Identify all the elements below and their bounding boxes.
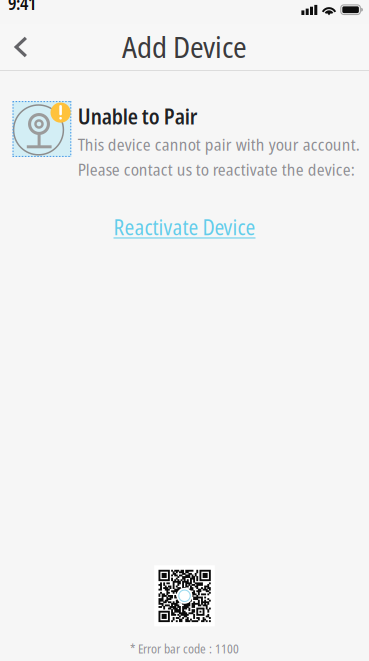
staticText: Please contact us to reactivate the devi… (78, 158, 355, 181)
staticText: Add Device (122, 26, 247, 67)
button[interactable]: Back (0, 24, 42, 70)
staticText: * Error bar code : 1100 (130, 640, 239, 657)
staticText: Unable to Pair (78, 102, 198, 131)
button[interactable]: Reactivate Device (113, 213, 255, 241)
staticText: This device cannot pair with your accoun… (78, 133, 360, 156)
staticText: 9:41 (8, 0, 36, 15)
staticText: Reactivate Device (113, 213, 255, 241)
